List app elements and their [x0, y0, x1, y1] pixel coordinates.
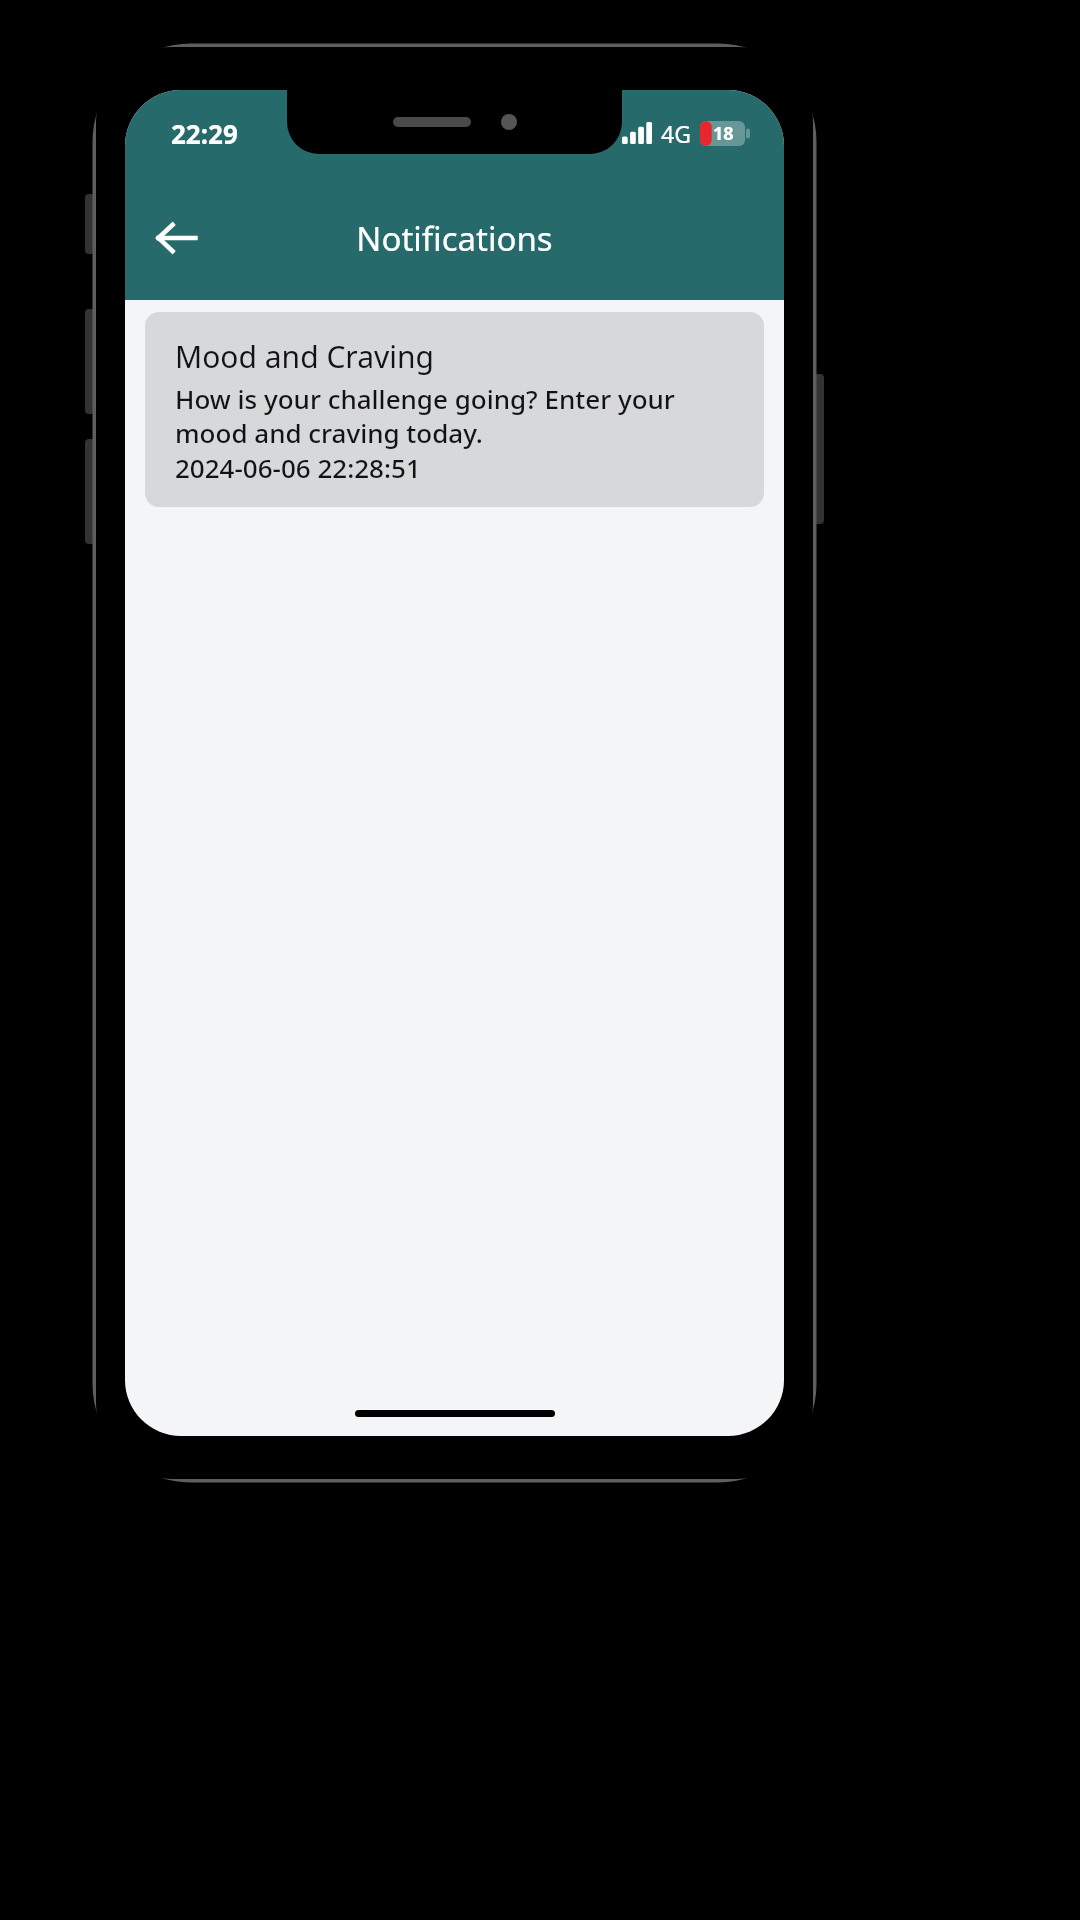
staticText: Notifications	[125, 216, 784, 261]
staticText: 22:29	[171, 116, 238, 151]
staticText: 2024-06-06 22:28:51	[175, 450, 421, 485]
button[interactable]: Mood and Craving	[145, 312, 764, 507]
staticText: 4G	[661, 118, 691, 149]
button[interactable]: Back	[145, 206, 209, 270]
staticText: 18	[713, 121, 734, 146]
staticText: How is your challenge going? Enter your …	[175, 381, 744, 450]
staticText: Mood and Craving	[175, 336, 434, 377]
